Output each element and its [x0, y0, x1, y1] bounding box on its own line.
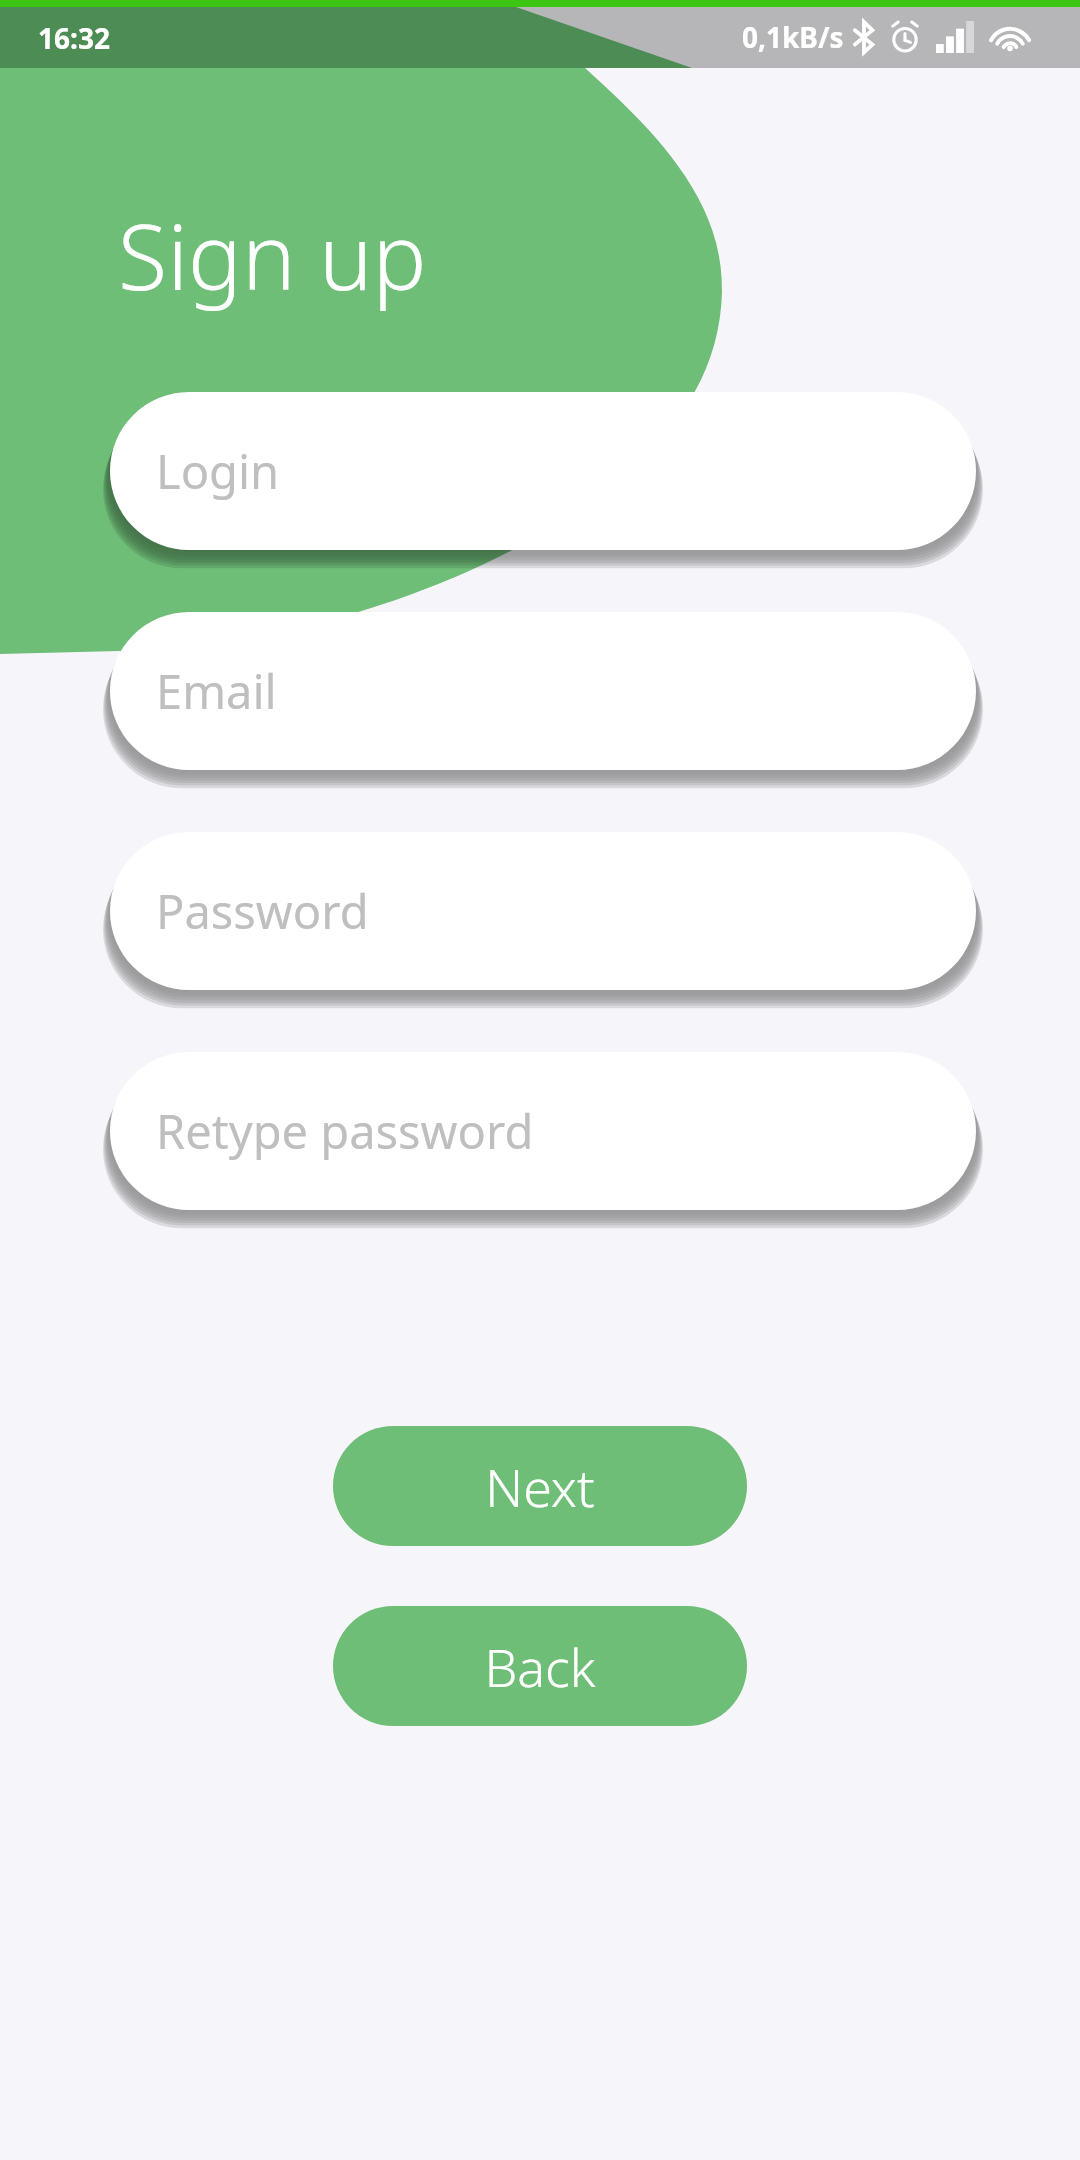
staticText: Email — [156, 659, 277, 723]
staticText: Login — [156, 439, 280, 503]
button[interactable]: Next — [333, 1426, 747, 1546]
button[interactable]: Login — [110, 392, 976, 550]
staticText: 16:32 — [38, 19, 110, 57]
button[interactable]: Back — [333, 1606, 747, 1726]
staticText: Back — [484, 1631, 596, 1702]
staticText: Password — [156, 879, 369, 943]
staticText: Next — [485, 1451, 595, 1522]
button[interactable]: Email — [110, 612, 976, 770]
button[interactable]: Retype password — [110, 1052, 976, 1210]
staticText: 0,1kB/s — [742, 18, 844, 56]
staticText: Sign up — [118, 194, 427, 317]
staticText: Retype password — [156, 1099, 534, 1163]
button[interactable]: Password — [110, 832, 976, 990]
